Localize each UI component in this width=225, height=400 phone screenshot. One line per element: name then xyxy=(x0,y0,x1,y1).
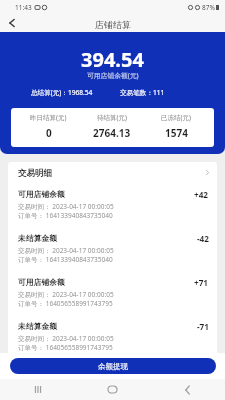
button[interactable]: 可用店铺余额 xyxy=(8,185,217,229)
staticText: 11:43 xyxy=(15,3,32,12)
staticText: +42 xyxy=(194,189,209,200)
staticText: 订单号： 164133940843735040 xyxy=(18,255,113,264)
staticText: 394.54 xyxy=(81,46,144,73)
staticText: 可用店铺余额(元) xyxy=(87,71,139,80)
staticText: 余额提现 xyxy=(98,362,128,371)
staticText: +71 xyxy=(194,277,209,288)
staticText: 交易笔数：111 xyxy=(120,88,165,97)
staticText: 交易明细 xyxy=(18,168,52,179)
staticText: 店铺结算 xyxy=(95,19,131,30)
staticText: 87% xyxy=(202,3,215,12)
staticText: 可用店铺余额 xyxy=(18,277,65,287)
button[interactable]: 未结算金额 xyxy=(8,229,217,273)
staticText: 2764.13 xyxy=(93,126,131,140)
staticText: 昨日结算(元) xyxy=(30,113,67,122)
button[interactable]: Home xyxy=(75,379,150,400)
staticText: 交易时间： 2023-04-17 00:00:05 xyxy=(18,246,114,255)
staticText: 0 xyxy=(46,126,52,140)
staticText: 已冻结(元) xyxy=(161,113,191,122)
staticText: -42 xyxy=(197,233,209,244)
staticText: 交易时间： 2023-04-17 00:00:05 xyxy=(18,290,114,299)
staticText: 待结算(元) xyxy=(97,113,127,122)
staticText: 交易时间： 2023-04-17 00:00:05 xyxy=(18,334,114,343)
button[interactable]: Back xyxy=(150,379,225,400)
button[interactable]: 未结算金额 xyxy=(8,317,217,361)
button[interactable]: 余额提现 xyxy=(10,358,216,374)
staticText: 1574 xyxy=(165,126,188,140)
staticText: 订单号： 164133940843735040 xyxy=(18,211,113,220)
staticText: 未结算金额 xyxy=(18,233,57,243)
staticText: 未结算金额 xyxy=(18,321,57,331)
button[interactable]: 可用店铺余额 xyxy=(8,273,217,317)
button[interactable]: Back xyxy=(0,14,23,32)
staticText: 可用店铺余额 xyxy=(18,189,65,199)
button[interactable]: Recents xyxy=(0,379,75,400)
staticText: 总结算(元)：1968.54 xyxy=(31,88,93,97)
staticText: 交易时间： 2023-04-17 00:00:05 xyxy=(18,202,114,211)
staticText: 订单号： 164056558991743795 xyxy=(18,343,113,352)
button[interactable]: 交易明细 xyxy=(8,162,217,185)
staticText: -71 xyxy=(197,321,209,332)
staticText: 订单号： 164056558991743795 xyxy=(18,299,113,308)
